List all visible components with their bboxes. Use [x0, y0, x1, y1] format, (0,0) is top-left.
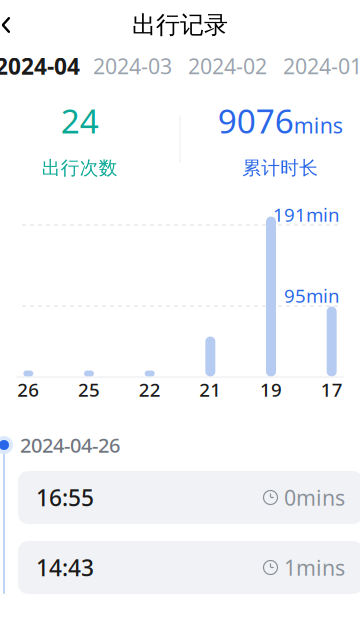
staticText: 0mins — [284, 483, 345, 512]
staticText: 2024-04-26 — [20, 432, 120, 458]
staticText: 22 — [139, 377, 161, 402]
staticText: 2024-01 — [283, 52, 360, 80]
button[interactable]: 14:43 — [18, 541, 360, 594]
staticText: 19 — [260, 377, 282, 402]
staticText: 1mins — [284, 553, 345, 582]
staticText: 191min — [273, 202, 340, 227]
staticText: 9076 — [218, 98, 294, 143]
staticText: 14:43 — [36, 552, 94, 582]
staticText: 2024-02 — [188, 52, 267, 80]
staticText: 26 — [17, 377, 39, 402]
button[interactable]: 2024-04 — [0, 51, 85, 81]
staticText: 2024-03 — [93, 52, 172, 80]
button[interactable]: 2024-03 — [85, 51, 180, 81]
staticText: 21 — [199, 377, 221, 402]
button[interactable]: 2024-01 — [275, 51, 360, 81]
staticText: 24 — [61, 98, 99, 143]
staticText: 出行次数 — [42, 157, 118, 180]
staticText: 累计时长 — [242, 157, 318, 180]
staticText: 16:55 — [36, 482, 94, 512]
button[interactable]: 2024-02 — [180, 51, 275, 81]
staticText: 2024-04 — [0, 51, 80, 81]
staticText: 出行记录 — [132, 10, 228, 40]
button[interactable]: Back — [0, 5, 26, 45]
staticText: mins — [294, 111, 343, 139]
staticText: 17 — [321, 377, 343, 402]
staticText: 95min — [284, 283, 340, 308]
staticText: 25 — [78, 377, 100, 402]
button[interactable]: 16:55 — [18, 471, 360, 524]
